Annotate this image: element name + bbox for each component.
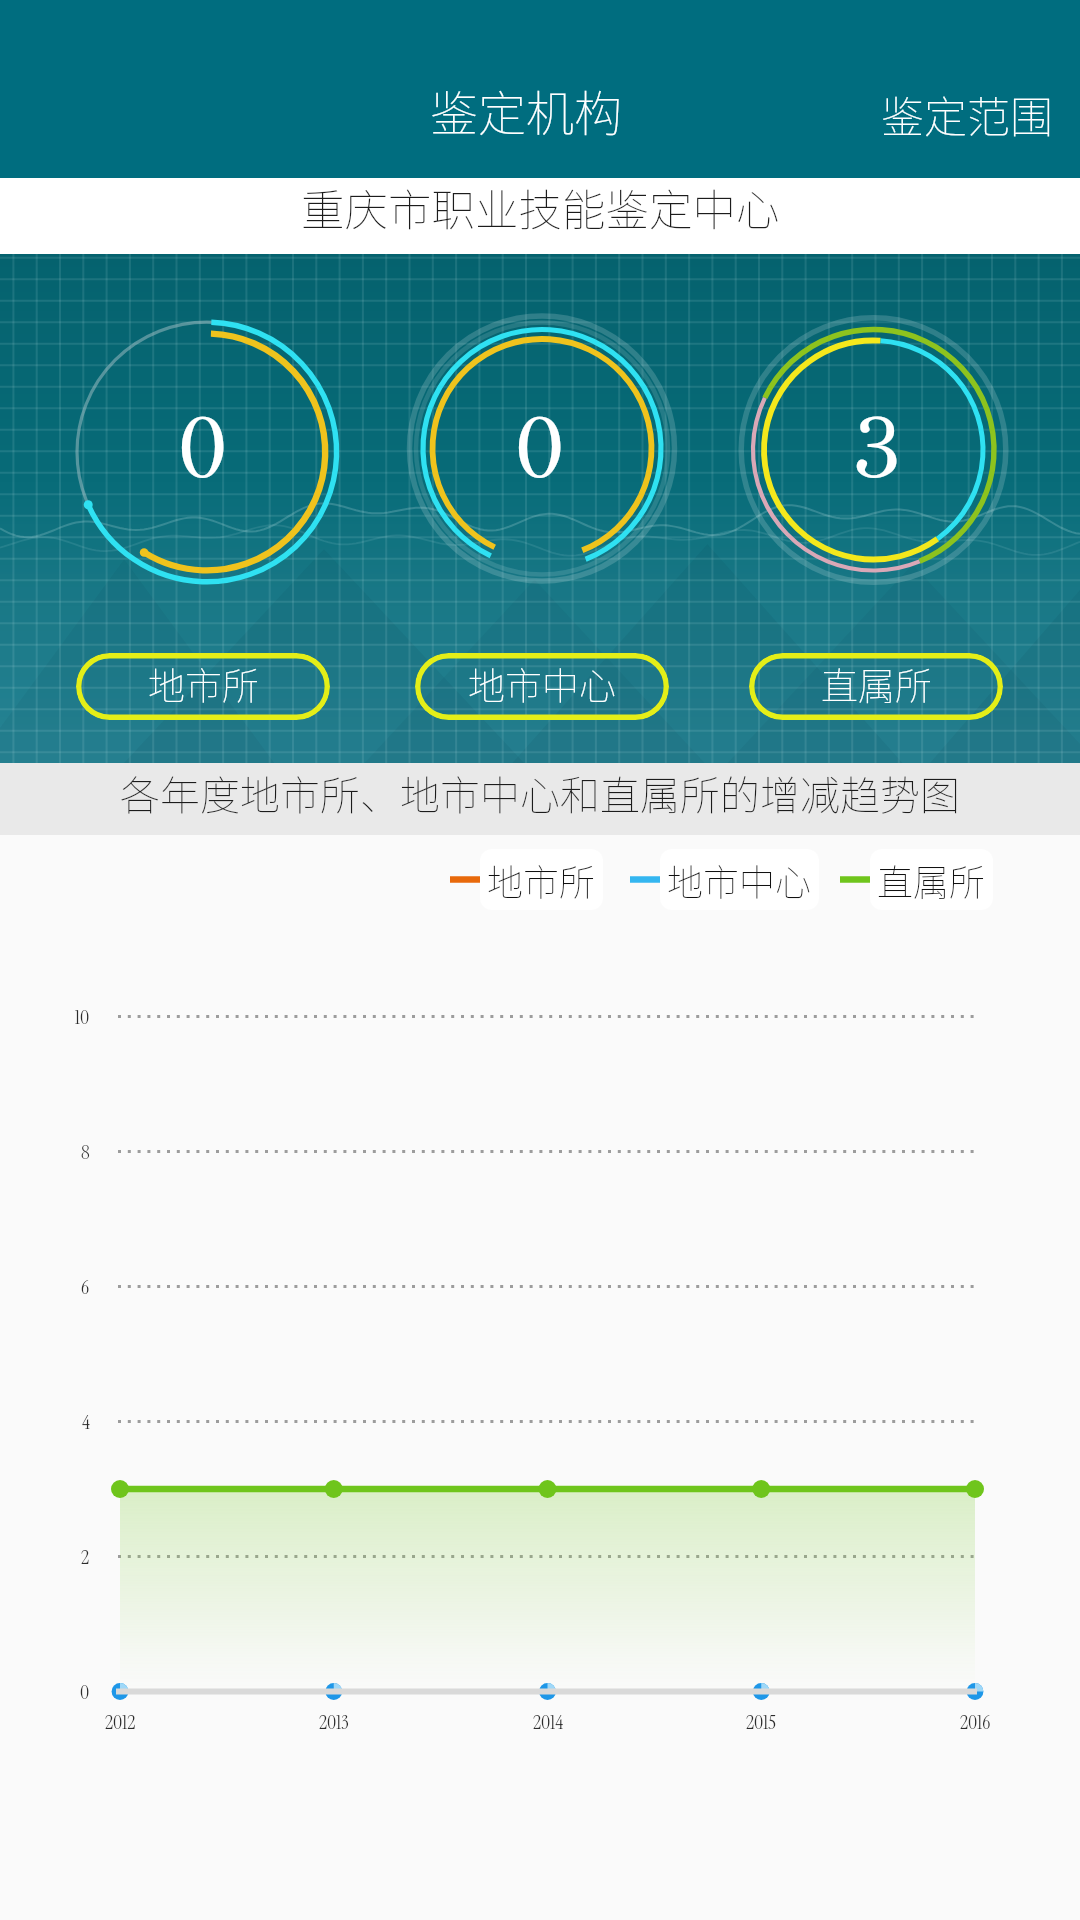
button[interactable]: 地市中心 [630, 849, 819, 910]
staticText: 直属所 [877, 854, 986, 906]
staticText: 地市中心 [667, 854, 812, 906]
staticText: 鉴定范围 [881, 83, 1053, 145]
staticText: 地市中心 [468, 657, 616, 711]
staticText: 2014 [533, 1709, 564, 1735]
staticText: 0 [515, 396, 565, 501]
staticText: 0 [178, 396, 228, 501]
button[interactable]: 鉴定范围 [881, 83, 1053, 145]
staticText: 直属所 [821, 657, 932, 711]
staticText: 地市所 [148, 657, 259, 711]
button[interactable]: 地市所 [450, 849, 603, 910]
staticText: 各年度地市所、地市中心和直属所的增减趋势图 [120, 764, 960, 822]
staticText: 3 [852, 396, 901, 501]
staticText: 鉴定机构 [430, 75, 623, 145]
staticText: 10 [75, 1004, 90, 1030]
button[interactable]: 直属所 [840, 849, 993, 910]
staticText: 2012 [105, 1709, 136, 1735]
button[interactable]: 直属所 [749, 653, 1003, 720]
staticText: 2016 [960, 1709, 991, 1735]
staticText: 8 [81, 1139, 90, 1165]
staticText: 4 [82, 1409, 90, 1435]
staticText: 2013 [319, 1709, 349, 1735]
button[interactable]: 地市所 [76, 653, 330, 720]
staticText: 6 [81, 1274, 90, 1300]
staticText: 地市所 [487, 854, 596, 906]
staticText: 重庆市职业技能鉴定中心 [301, 176, 780, 239]
staticText: 2 [81, 1544, 90, 1570]
button[interactable]: 地市中心 [415, 653, 669, 720]
staticText: 0 [80, 1679, 90, 1705]
staticText: 2015 [746, 1709, 776, 1735]
button[interactable]: 鉴定机构 [430, 75, 623, 145]
